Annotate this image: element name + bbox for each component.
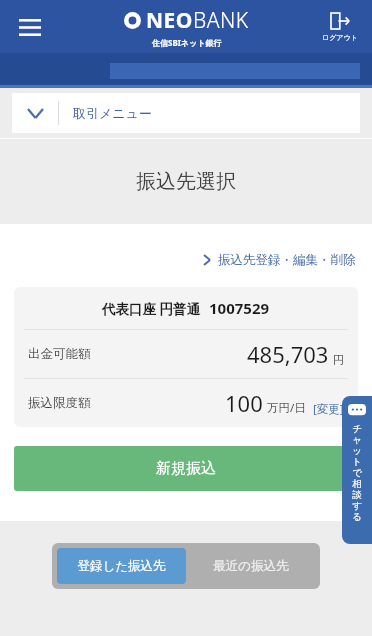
button[interactable]: チャットで相談する	[342, 396, 372, 544]
staticText: 振込先登録・編集・削除	[218, 252, 356, 268]
button[interactable]: [変更]	[313, 401, 344, 418]
button[interactable]: 最近の振込先	[186, 548, 315, 584]
staticText: ログアウト	[322, 33, 358, 42]
staticText: 円	[333, 353, 344, 367]
staticText: 485,703	[247, 339, 329, 369]
staticText: 取引メニュー	[73, 105, 152, 121]
button[interactable]: 新規振込	[14, 446, 358, 491]
staticText: 新規振込	[156, 459, 216, 478]
staticText: 100	[225, 388, 263, 418]
staticText: NEO	[146, 6, 193, 35]
staticText: 最近の振込先	[213, 558, 289, 574]
staticText: BANK	[193, 6, 249, 35]
staticText: チャットで相談する	[351, 423, 363, 523]
button[interactable]: Menu	[8, 5, 52, 49]
staticText: 出金可能額	[28, 346, 91, 362]
button[interactable]: 振込先登録・編集・削除	[203, 252, 356, 268]
staticText: 1007529	[209, 298, 270, 318]
button[interactable]: 取引メニュー	[12, 93, 360, 133]
staticText: 万円/日	[267, 400, 306, 416]
staticText: [変更]	[313, 401, 344, 417]
staticText: 代表口座 円普通	[102, 300, 201, 318]
button[interactable]: ログアウト	[316, 12, 364, 42]
staticText: 住信SBIネット銀行	[152, 37, 222, 48]
button[interactable]: 登録した振込先	[57, 548, 186, 584]
staticText: 登録した振込先	[77, 558, 166, 574]
staticText: 振込限度額	[28, 395, 91, 411]
staticText: 振込先選択	[136, 169, 236, 194]
